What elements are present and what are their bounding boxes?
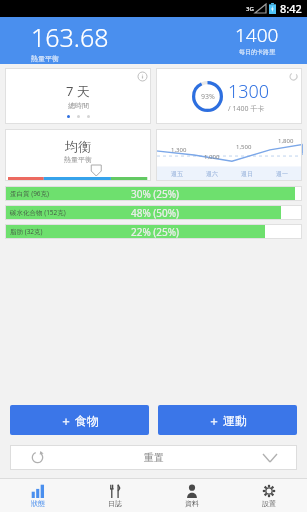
button[interactable]: 脂肪 (32克)	[5, 224, 302, 239]
staticText: 脂肪 (32克)	[10, 227, 43, 236]
staticText: 週六	[206, 170, 218, 178]
staticText: 狀態	[31, 499, 45, 508]
staticText: 1300	[228, 79, 270, 104]
button[interactable]: ＋ 運動	[158, 405, 297, 435]
button[interactable]: 均衡	[5, 129, 151, 181]
staticText: 1,000	[204, 153, 220, 161]
staticText: 30% (25%)	[131, 187, 180, 201]
staticText: 1400	[235, 22, 279, 48]
button[interactable]: 資料	[153, 479, 230, 512]
staticText: 熱量平衡	[31, 54, 59, 63]
staticText: 資料	[185, 499, 199, 508]
staticText: 93%	[201, 92, 215, 102]
button[interactable]: Refresh	[10, 445, 297, 470]
staticText: 日誌	[108, 499, 122, 508]
staticText: 均衡	[65, 138, 91, 154]
button[interactable]: Info	[5, 68, 151, 124]
staticText: 1,800	[278, 137, 294, 145]
staticText: ＋ 食物	[60, 412, 100, 428]
staticText: 1,300	[171, 146, 187, 154]
staticText: 重置	[144, 451, 164, 464]
staticText: 熱量平衡	[64, 155, 92, 164]
staticText: 8:42	[280, 1, 302, 16]
other: Refresh	[10, 445, 65, 470]
staticText: 週一	[276, 170, 288, 178]
button[interactable]: Refresh	[156, 68, 302, 124]
button[interactable]: 1,300	[156, 129, 302, 181]
staticText: 碳水化合物 (152克)	[10, 208, 66, 217]
staticText: 總時間	[68, 101, 89, 110]
staticText: 1,500	[236, 143, 252, 151]
staticText: 22% (25%)	[131, 225, 180, 239]
other: Info	[138, 72, 147, 81]
staticText: 週五	[171, 170, 183, 178]
staticText: 設置	[262, 499, 276, 508]
staticText: 蛋白質 (96克)	[10, 189, 50, 198]
staticText: 每日的卡路里	[239, 48, 275, 56]
staticText: 48% (50%)	[131, 206, 180, 220]
button[interactable]: 蛋白質 (96克)	[5, 186, 302, 201]
staticText: 163.68	[31, 20, 109, 54]
staticText: 7 天	[66, 82, 90, 100]
staticText: 3G	[246, 5, 254, 13]
other: Expand	[242, 445, 297, 470]
button[interactable]: 日誌	[76, 479, 153, 512]
button[interactable]: ＋ 食物	[10, 405, 149, 435]
staticText: 週日	[241, 170, 253, 178]
button[interactable]: 碳水化合物 (152克)	[5, 205, 302, 220]
other: Refresh	[289, 72, 298, 81]
staticText: / 1400 千卡	[228, 104, 265, 114]
staticText: ＋ 運動	[208, 412, 248, 428]
button[interactable]: 設置	[230, 479, 307, 512]
button[interactable]: 狀態	[0, 479, 76, 512]
